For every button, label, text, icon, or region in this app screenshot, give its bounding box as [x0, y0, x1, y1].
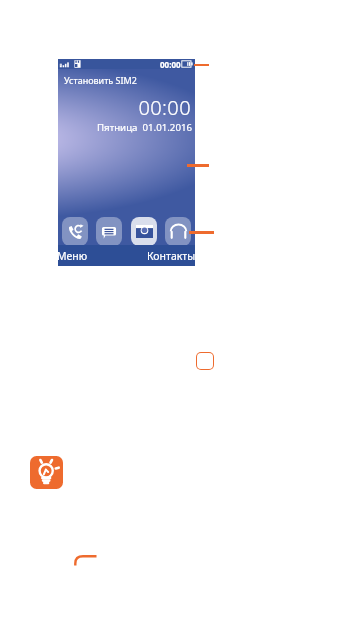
- button[interactable]: Call log: [62, 217, 88, 246]
- button[interactable]: Меню: [58, 249, 88, 263]
- staticText: Пятница 01.01.2016: [58, 121, 192, 134]
- staticText: Установить SIM2: [64, 74, 137, 86]
- staticText: 00:00: [58, 94, 191, 121]
- staticText: 00:00: [160, 59, 181, 69]
- button[interactable]: Messages: [96, 217, 122, 246]
- button[interactable]: Контакты: [147, 249, 195, 263]
- button[interactable]: Camera: [131, 217, 157, 246]
- button[interactable]: Music: [165, 217, 191, 246]
- button[interactable]: Tips: [30, 456, 63, 489]
